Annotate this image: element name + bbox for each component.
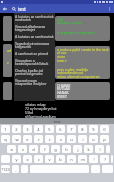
staticText: . <box>95 167 97 172</box>
button[interactable]: 7 <box>67 125 76 133</box>
button[interactable]: z <box>56 135 65 143</box>
staticText: , <box>15 167 17 172</box>
button[interactable]: e <box>23 135 32 143</box>
staticText: ad <box>7 48 11 53</box>
button[interactable]: Back <box>0 4 10 13</box>
button[interactable]: w <box>12 135 21 143</box>
button[interactable]: 5 <box>45 125 54 133</box>
button[interactable]: ?123 <box>1 165 10 173</box>
button[interactable]: ? <box>100 155 109 163</box>
button[interactable]: Emoji <box>21 165 28 173</box>
staticText: Charles kpelkc-tol pontot kiegeszito <box>15 68 44 76</box>
button[interactable]: CHABAK RUTLAB HANAK KVEET <box>55 82 110 100</box>
button[interactable]: q <box>1 135 10 143</box>
button[interactable]: o <box>89 135 98 143</box>
staticText: edit dynamic status <box>57 17 82 25</box>
staticText: j <box>77 147 79 152</box>
button[interactable]: y <box>12 155 21 163</box>
staticText: l <box>99 147 101 152</box>
button[interactable]: ! <box>89 155 98 163</box>
staticText: y <box>15 157 18 162</box>
staticText: c <box>38 157 40 162</box>
staticText: 2 <box>15 127 18 132</box>
button[interactable]: Shift <box>1 155 10 163</box>
staticText: Visszad alkalmazas kiegeszitojet <box>15 24 46 32</box>
staticText: w <box>15 137 19 142</box>
button[interactable]: r <box>34 135 43 143</box>
button[interactable]: c <box>34 155 43 163</box>
button[interactable]: x <box>23 155 32 163</box>
button[interactable]: h <box>62 145 71 153</box>
staticText: t <box>49 137 51 142</box>
staticText: A szerkeszt az pirosd <box>15 51 49 56</box>
button[interactable]: u <box>67 135 76 143</box>
button[interactable]: b <box>56 155 65 163</box>
staticText: ! <box>93 157 95 162</box>
button[interactable]: 2 <box>12 125 21 133</box>
staticText: u <box>70 137 73 142</box>
staticText: Visszad maga nitapontka mulykor <box>15 78 47 86</box>
button[interactable]: v <box>45 155 54 163</box>
button[interactable]: i <box>78 135 87 143</box>
staticText: Visszadom a kezdolapuoskh0zkuk <box>15 58 49 66</box>
button[interactable]: edit dynamic status <box>55 16 110 41</box>
button[interactable]: 3 <box>23 125 32 133</box>
button[interactable]: d <box>29 145 38 153</box>
button[interactable]: 9 <box>89 125 98 133</box>
staticText: o <box>92 137 95 142</box>
button[interactable]: a make a pyful create to the task of our… <box>55 46 110 79</box>
button[interactable]: test <box>0 118 114 124</box>
button[interactable]: t <box>45 135 54 143</box>
button[interactable]: 6 <box>56 125 65 133</box>
staticText: 3 <box>26 127 29 132</box>
button[interactable]: m <box>78 155 87 163</box>
button[interactable]: Backspace <box>111 155 113 163</box>
button[interactable]: s <box>18 145 27 153</box>
button[interactable]: Entry 3 <box>3 82 12 100</box>
button[interactable]: g <box>51 145 60 153</box>
button[interactable]: k <box>84 145 93 153</box>
button[interactable]: f <box>40 145 49 153</box>
button[interactable]: Enter <box>102 165 113 173</box>
staticText: 5 <box>48 127 51 132</box>
staticText: ?123 <box>1 167 10 172</box>
staticText: A kutatas az szerkesztok rendeztek <box>15 14 54 22</box>
staticText: 1 <box>4 127 7 132</box>
staticText: CHABAK RUTLAB HANAK KVEET <box>57 83 71 99</box>
button[interactable]: 4 <box>34 125 43 133</box>
staticText: p <box>103 137 106 142</box>
button[interactable]: 1 <box>1 125 10 133</box>
button[interactable]: a <box>7 145 16 153</box>
staticText: f <box>44 147 46 152</box>
staticText: n <box>70 157 73 162</box>
staticText: 8 <box>81 127 84 132</box>
button[interactable]: 8 <box>78 125 87 133</box>
button[interactable]: Entry 1 <box>3 16 12 41</box>
staticText: a make a pyful create to the task of our… <box>57 47 109 63</box>
button[interactable]: p <box>100 135 109 143</box>
button[interactable]: , <box>12 165 19 173</box>
staticText: 9 <box>92 127 95 132</box>
button[interactable]: Entry 2 <box>3 44 12 77</box>
staticText: pres a glee, mathijs anbieatmatecud mbaa… <box>57 67 109 79</box>
button[interactable]: Search <box>106 145 110 153</box>
staticText: s <box>22 147 24 152</box>
staticText: q <box>4 137 7 142</box>
staticText: 6 <box>59 127 62 132</box>
button[interactable]: l <box>95 145 104 153</box>
staticText: Tagadod piroztamaza kiegeszito <box>15 41 50 49</box>
staticText: A kutatas az szerkesztok <box>15 34 54 39</box>
staticText: b <box>59 157 62 162</box>
button[interactable]: . <box>91 165 100 173</box>
staticText: ? <box>104 157 106 162</box>
button[interactable]: test <box>12 5 26 13</box>
staticText: h <box>65 147 68 152</box>
staticText: i <box>82 137 84 142</box>
button[interactable]: j <box>73 145 82 153</box>
staticText: 7 <box>70 127 73 132</box>
button[interactable]: n <box>67 155 76 163</box>
button[interactable]: 0 <box>100 125 109 133</box>
staticText: g <box>54 147 57 152</box>
staticText: test <box>54 119 61 124</box>
